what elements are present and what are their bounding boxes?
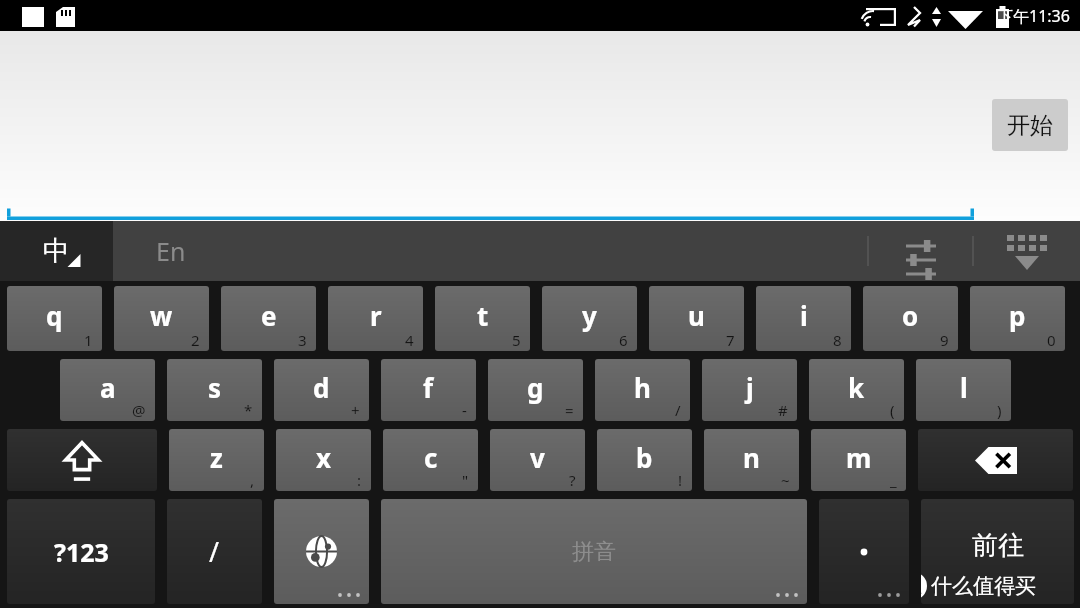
staticText: t [477, 298, 489, 333]
button[interactable]: u [649, 286, 744, 351]
staticText: - [462, 400, 467, 420]
button[interactable]: ?123 [7, 499, 155, 604]
staticText: d [313, 370, 330, 405]
button[interactable]: 开始 [992, 99, 1068, 151]
button[interactable]: g [488, 359, 583, 421]
staticText: h [634, 370, 651, 405]
staticText: 4 [405, 330, 414, 350]
button[interactable]: d [274, 359, 369, 421]
staticText: j [746, 370, 754, 405]
button[interactable] [819, 499, 909, 604]
button[interactable]: 前往 [921, 499, 1074, 604]
staticText: r [370, 298, 382, 333]
staticText: c [424, 440, 438, 475]
staticText: o [902, 298, 919, 333]
button[interactable]: l [916, 359, 1011, 421]
button[interactable]: e [221, 286, 316, 351]
button[interactable]: k [809, 359, 904, 421]
staticText: 前往 [972, 529, 1024, 562]
button[interactable]: Backspace [918, 429, 1073, 491]
button[interactable]: a [60, 359, 155, 421]
staticText: + [351, 400, 360, 420]
button[interactable]: h [595, 359, 690, 421]
button[interactable]: t [435, 286, 530, 351]
staticText: 3 [298, 330, 307, 350]
staticText: 0 [1047, 330, 1056, 350]
staticText: x [316, 440, 332, 475]
button[interactable]: i [756, 286, 851, 351]
button[interactable]: Keyboard settings [868, 221, 973, 281]
staticText: f [423, 370, 434, 405]
button[interactable]: m [811, 429, 906, 491]
button[interactable]: v [490, 429, 585, 491]
staticText: ?123 [54, 535, 109, 569]
button[interactable]: y [542, 286, 637, 351]
staticText: e [261, 298, 277, 333]
staticText: 下午11:36 [997, 5, 1070, 27]
button[interactable]: o [863, 286, 958, 351]
button[interactable]: r [328, 286, 423, 351]
staticText: # [778, 400, 788, 420]
button[interactable]: s [167, 359, 262, 421]
staticText: 开始 [1007, 111, 1053, 140]
staticText: 7 [726, 330, 735, 350]
staticText: v [530, 440, 545, 475]
button[interactable]: n [704, 429, 799, 491]
staticText: k [848, 370, 865, 405]
staticText: , [250, 470, 255, 490]
staticText: i [800, 298, 808, 333]
staticText: : [357, 470, 362, 490]
staticText: 1 [84, 330, 93, 350]
staticText: / [675, 400, 681, 420]
staticText: l [960, 370, 968, 405]
staticText: ? [569, 470, 576, 490]
button[interactable]: Change keyboard language [274, 499, 369, 604]
staticText: = [565, 400, 574, 420]
staticText: 拼音 [572, 538, 616, 566]
staticText: 8 [833, 330, 842, 350]
staticText: g [527, 370, 544, 405]
staticText: 5 [512, 330, 521, 350]
staticText: b [636, 440, 653, 475]
button[interactable]: w [114, 286, 209, 351]
staticText: 9 [940, 330, 949, 350]
button[interactable]: f [381, 359, 476, 421]
staticText: q [46, 298, 63, 333]
staticText: ) [997, 400, 1002, 420]
staticText: " [462, 470, 469, 490]
staticText: 什么值得买 [931, 573, 1036, 599]
staticText: y [582, 298, 597, 333]
staticText: z [210, 440, 223, 475]
button[interactable]: p [970, 286, 1065, 351]
staticText: En [156, 234, 186, 268]
button[interactable]: b [597, 429, 692, 491]
button[interactable]: Shift [7, 429, 157, 491]
staticText: w [150, 298, 173, 333]
staticText: 值 [921, 576, 922, 597]
button[interactable]: Space [381, 499, 807, 604]
staticText: s [208, 370, 222, 405]
staticText: 中 [43, 234, 70, 268]
staticText: ! [678, 470, 683, 490]
staticText: n [743, 440, 760, 475]
button[interactable]: 中 [0, 221, 113, 281]
staticText: m [846, 440, 872, 475]
button[interactable]: En [113, 221, 228, 281]
button[interactable]: j [702, 359, 797, 421]
button[interactable]: Hide keyboard [973, 221, 1080, 281]
staticText: u [688, 298, 705, 333]
button[interactable]: z [169, 429, 264, 491]
button[interactable]: c [383, 429, 478, 491]
button[interactable]: / [167, 499, 262, 604]
staticText: p [1009, 298, 1026, 333]
button[interactable]: x [276, 429, 371, 491]
staticText: 2 [191, 330, 200, 350]
staticText: @ [132, 400, 146, 420]
staticText: ~ [781, 470, 790, 490]
staticText: _ [890, 470, 897, 490]
staticText: 6 [619, 330, 628, 350]
staticText: / [209, 533, 220, 570]
button[interactable]: q [7, 286, 102, 351]
staticText: * [244, 400, 253, 420]
staticText: a [100, 370, 116, 405]
